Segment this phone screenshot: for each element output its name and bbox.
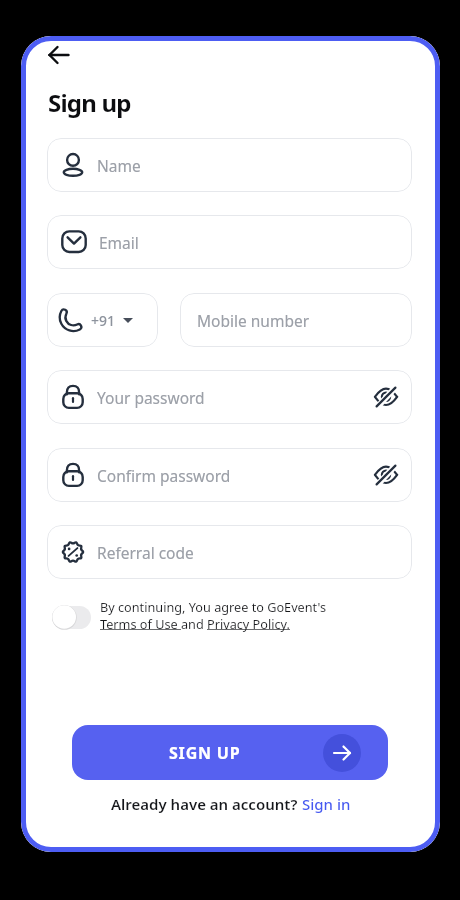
staticText: Email: [99, 232, 139, 253]
button[interactable]: +91: [47, 293, 158, 347]
staticText: Already have an account?: [111, 794, 302, 814]
button[interactable]: Name: [47, 138, 412, 192]
button[interactable]: Sign in: [302, 794, 351, 814]
button[interactable]: Email: [47, 215, 412, 269]
staticText: Mobile number: [197, 310, 310, 331]
staticText: Sign up: [48, 86, 131, 119]
staticText: Your password: [97, 387, 205, 408]
staticText: +91: [91, 311, 116, 330]
button[interactable]: [45, 41, 73, 69]
button[interactable]: SIGN UP: [72, 725, 388, 780]
button[interactable]: [52, 603, 94, 631]
staticText: By continuing, You agree to GoEvent's: [100, 598, 327, 615]
button[interactable]: Your password: [47, 370, 412, 424]
button[interactable]: Mobile number: [180, 293, 412, 347]
staticText: Confirm password: [97, 465, 231, 486]
staticText: Referral code: [97, 542, 194, 563]
button[interactable]: [374, 463, 398, 487]
staticText: SIGN UP: [169, 742, 241, 764]
button[interactable]: [374, 385, 398, 409]
staticText: Name: [97, 155, 141, 176]
staticText: Terms of Use and Privacy Policy.: [100, 615, 290, 632]
button[interactable]: Referral code: [47, 525, 412, 579]
button[interactable]: By continuing, You agree to GoEvent's: [100, 598, 327, 632]
button[interactable]: Confirm password: [47, 448, 412, 502]
